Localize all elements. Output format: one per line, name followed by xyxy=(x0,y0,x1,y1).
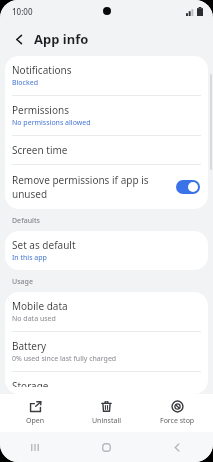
staticText: Usage xyxy=(12,277,33,287)
button[interactable]: Remove permissions if app is unused xyxy=(5,165,208,209)
button[interactable]: Set as default xyxy=(5,231,208,270)
button[interactable]: Back xyxy=(142,432,213,462)
staticText: In this app xyxy=(12,253,47,263)
staticText: Notifications xyxy=(12,63,72,77)
staticText: Mobile data xyxy=(12,299,68,313)
staticText: Remove permissions if app is unused xyxy=(12,173,172,201)
button[interactable]: Recents xyxy=(0,432,71,462)
button[interactable]: Permissions xyxy=(5,96,208,135)
button[interactable]: Force stop xyxy=(142,394,213,432)
staticText: Defaults xyxy=(12,216,40,226)
staticText: Storage xyxy=(12,379,49,387)
staticText: Uninstall xyxy=(92,416,121,426)
button[interactable]: Uninstall xyxy=(71,394,142,432)
button[interactable]: Mobile data xyxy=(5,292,208,331)
staticText: Screen time xyxy=(12,143,68,157)
button[interactable]: Back xyxy=(6,26,32,52)
staticText: Permissions xyxy=(12,103,69,117)
staticText: No data used xyxy=(12,314,56,324)
staticText: Set as default xyxy=(12,238,76,252)
button[interactable]: Screen time xyxy=(5,136,208,164)
staticText: No permissions allowed xyxy=(12,118,91,128)
staticText: 0% used since last fully charged xyxy=(12,354,117,364)
staticText: Battery xyxy=(12,339,47,353)
staticText: Open xyxy=(26,416,45,426)
button[interactable]: Home xyxy=(71,432,142,462)
button[interactable]: Storage xyxy=(5,372,208,394)
staticText: Blocked xyxy=(12,78,38,88)
button[interactable]: Open xyxy=(0,394,71,432)
button[interactable]: Battery xyxy=(5,332,208,371)
staticText: 10:00 xyxy=(12,6,33,17)
staticText: App info xyxy=(34,30,89,48)
button[interactable]: Notifications xyxy=(5,56,208,95)
staticText: Force stop xyxy=(160,416,195,426)
